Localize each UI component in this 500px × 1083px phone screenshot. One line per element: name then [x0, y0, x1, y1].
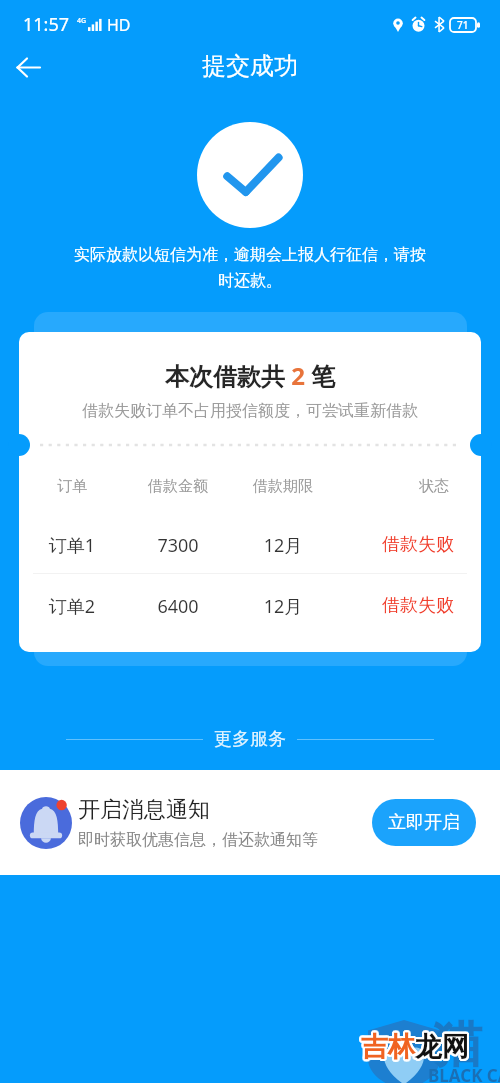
- staticText: 状态: [374, 477, 481, 496]
- staticText: 借款期限: [223, 477, 343, 496]
- staticText: 立即开启: [388, 811, 460, 834]
- staticText: 吉林龙网: [360, 1030, 468, 1064]
- staticText: 吉林龙网: [361, 1030, 469, 1064]
- staticText: 4G: [77, 16, 87, 26]
- button[interactable]: Back: [6, 45, 50, 89]
- staticText: 借款失败: [358, 533, 478, 556]
- staticText: 吉林龙网: [360, 1032, 468, 1066]
- staticText: 吉林龙网: [362, 1030, 470, 1064]
- staticText: 吉林龙网: [361, 1028, 469, 1062]
- staticText: 12月: [223, 594, 343, 619]
- staticText: 吉林龙网: [361, 1032, 469, 1066]
- staticText: 提交成功: [202, 51, 298, 81]
- staticText: 吉林龙网: [359, 1029, 467, 1063]
- staticText: 11:57: [23, 12, 70, 37]
- staticText: 借款失败订单不占用授信额度，可尝试重新借款: [19, 401, 481, 421]
- staticText: 吉林龙网: [359, 1030, 467, 1064]
- staticText: 即时获取优惠信息，借还款通知等: [78, 830, 318, 850]
- staticText: 吉林龙网: [360, 1031, 468, 1065]
- staticText: 借款失败: [358, 594, 478, 617]
- staticText: 猫: [432, 1013, 482, 1076]
- staticText: 本次借款共 2 笔: [165, 359, 336, 392]
- staticText: 订单1: [19, 533, 132, 558]
- staticText: 订单2: [19, 594, 132, 619]
- button[interactable]: 立即开启: [372, 799, 476, 846]
- staticText: 吉林龙网: [362, 1032, 470, 1066]
- staticText: 更多服务: [214, 728, 286, 751]
- staticText: 实际放款以短信为准，逾期会上报人行征信，请按 时还款。: [30, 245, 470, 291]
- staticText: 71: [457, 18, 469, 32]
- staticText: HD: [107, 14, 131, 36]
- staticText: 吉林龙网: [360, 1028, 468, 1062]
- staticText: 吉林龙网: [363, 1030, 471, 1064]
- staticText: 吉林龙网: [360, 1029, 468, 1063]
- staticText: 7300: [118, 533, 238, 558]
- staticText: 开启消息通知: [78, 796, 210, 824]
- staticText: 借款金额: [118, 477, 238, 496]
- staticText: 吉林龙网: [361, 1031, 469, 1065]
- staticText: 吉林龙网: [361, 1029, 469, 1063]
- staticText: 吉林龙网: [363, 1029, 471, 1063]
- staticText: 吉林龙网: [361, 1030, 469, 1064]
- staticText: BLACK CAT: [428, 1064, 500, 1083]
- staticText: 吉林龙网: [362, 1028, 470, 1062]
- staticText: 吉林龙网: [362, 1031, 470, 1065]
- staticText: 12月: [223, 533, 343, 558]
- staticText: 6400: [118, 594, 238, 619]
- staticText: 订单: [19, 477, 132, 496]
- staticText: 吉林龙网: [362, 1029, 470, 1063]
- staticText: 吉林龙网: [359, 1031, 467, 1065]
- staticText: 吉林龙网: [363, 1031, 471, 1065]
